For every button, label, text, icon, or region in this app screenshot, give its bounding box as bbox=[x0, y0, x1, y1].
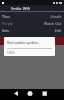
staticText: Thus bbox=[2, 14, 10, 19]
button[interactable]: Sets bbox=[0, 27, 64, 34]
staticText: Purple bbox=[2, 21, 13, 26]
staticText: 100% bbox=[7, 51, 15, 55]
staticText: Removable update... bbox=[7, 40, 41, 45]
staticText: Sets bbox=[2, 28, 9, 33]
staticText: Unsafe bbox=[50, 14, 62, 19]
button[interactable]: Purple bbox=[0, 20, 64, 27]
staticText: Settle Wifi bbox=[11, 6, 30, 11]
staticText: Edit bbox=[55, 28, 62, 33]
staticText: Watch Out bbox=[44, 21, 62, 26]
button[interactable]: Thus bbox=[0, 13, 64, 20]
